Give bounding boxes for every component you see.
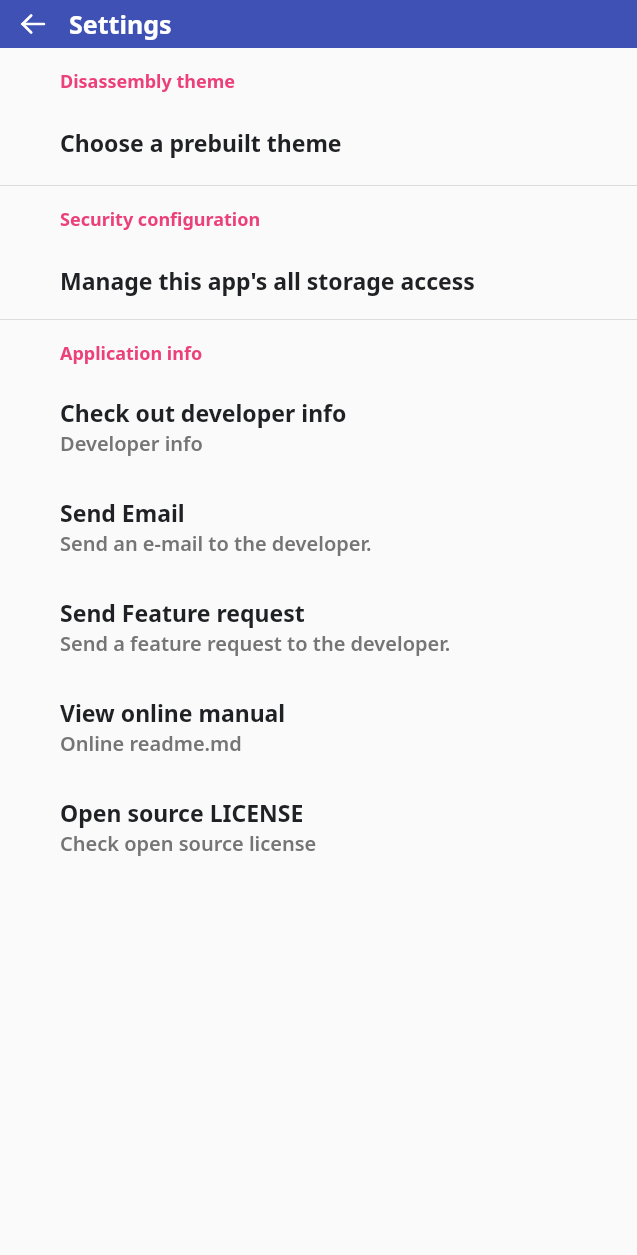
button[interactable]: Open source LICENSE [0,790,637,864]
staticText: Check open source license [60,830,317,857]
staticText: Developer info [60,430,203,457]
staticText: Send Email [60,497,185,528]
staticText: Open source LICENSE [60,797,304,828]
staticText: Choose a prebuilt theme [60,127,342,158]
staticText: Settings [69,7,172,41]
staticText: View online manual [60,697,286,728]
button[interactable]: Back [11,2,55,46]
staticText: Send a feature request to the developer. [60,630,451,657]
button[interactable]: Send Email [0,490,637,564]
staticText: Manage this app's all storage access [60,265,475,296]
staticText: Application info [60,341,613,366]
button[interactable]: Manage this app's all storage access [0,258,637,303]
button[interactable]: Check out developer info [0,390,637,464]
staticText: Disassembly theme [60,69,613,94]
staticText: Send an e-mail to the developer. [60,530,372,557]
staticText: Security configuration [60,207,613,232]
button[interactable]: Choose a prebuilt theme [0,120,637,165]
staticText: Online readme.md [60,730,242,757]
button[interactable]: View online manual [0,690,637,764]
staticText: Send Feature request [60,597,305,628]
staticText: Check out developer info [60,397,347,428]
button[interactable]: Send Feature request [0,590,637,664]
